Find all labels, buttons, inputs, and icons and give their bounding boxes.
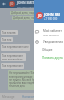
button[interactable]: Уведомления bbox=[34, 37, 64, 46]
button[interactable]: Так перезвоните мне пожалуйста ещё раз с… bbox=[1, 30, 18, 35]
staticText: JO bbox=[38, 14, 42, 18]
staticText: Так перезвоните мне пожалуйста ещё раз с… bbox=[2, 45, 29, 50]
button[interactable]: Так перезвоните мне пожалуйста ещё раз с… bbox=[1, 53, 26, 61]
staticText: Добрый день, подскажите пожалуйста bbox=[13, 16, 58, 20]
staticText: last seen today bbox=[17, 5, 34, 8]
staticText: Не переживайте! Берите в электронном вид… bbox=[9, 71, 56, 87]
button[interactable]: JO bbox=[36, 12, 43, 19]
staticText: Так перезвоните мне пожалуйста ещё раз с… bbox=[2, 64, 23, 68]
staticText: +7 900 000 bbox=[44, 17, 58, 21]
button[interactable]: Не переживайте! Берите в электронном вид… bbox=[8, 70, 57, 90]
button[interactable]: Так перезвоните мне пожалуйста ещё раз с… bbox=[1, 37, 13, 42]
button[interactable]: Общие настройки bbox=[34, 46, 64, 54]
button[interactable]: Так перезвоните мне пожалуйста ещё раз с… bbox=[1, 44, 30, 51]
button[interactable]: Добрый день, подскажите пожалуйста bbox=[10, 11, 57, 15]
staticText: Так перезвоните мне пожалуйста ещё раз с… bbox=[2, 54, 25, 60]
button[interactable]: Так перезвоните мне пожалуйста ещё раз с… bbox=[1, 63, 24, 69]
staticText: JO bbox=[10, 2, 14, 6]
staticText: Мои заказы и счета bbox=[43, 33, 64, 36]
button[interactable]: Back bbox=[2, 2, 6, 6]
staticText: Уведомления bbox=[43, 40, 63, 44]
button[interactable]: Позвать друга bbox=[34, 54, 64, 62]
staticText: JOHN SMITH bbox=[17, 1, 37, 5]
staticText: Позвать друга bbox=[42, 56, 63, 60]
staticText: Message bbox=[2, 95, 15, 99]
staticText: Мой кабинет bbox=[43, 29, 62, 33]
staticText: Добрый день, подскажите пожалуйста bbox=[11, 11, 57, 15]
staticText: Общие настройки bbox=[42, 48, 64, 52]
staticText: Так перезвоните мне пожалуйста ещё раз с… bbox=[2, 38, 12, 41]
staticText: Так перезвоните мне пожалуйста ещё раз с… bbox=[2, 31, 17, 34]
button[interactable]: Добрый день, подскажите пожалуйста bbox=[12, 16, 58, 20]
staticText: JOHN SM bbox=[44, 12, 61, 17]
button[interactable]: Мой кабинет bbox=[34, 27, 64, 37]
staticText: Написать bbox=[22, 95, 36, 99]
